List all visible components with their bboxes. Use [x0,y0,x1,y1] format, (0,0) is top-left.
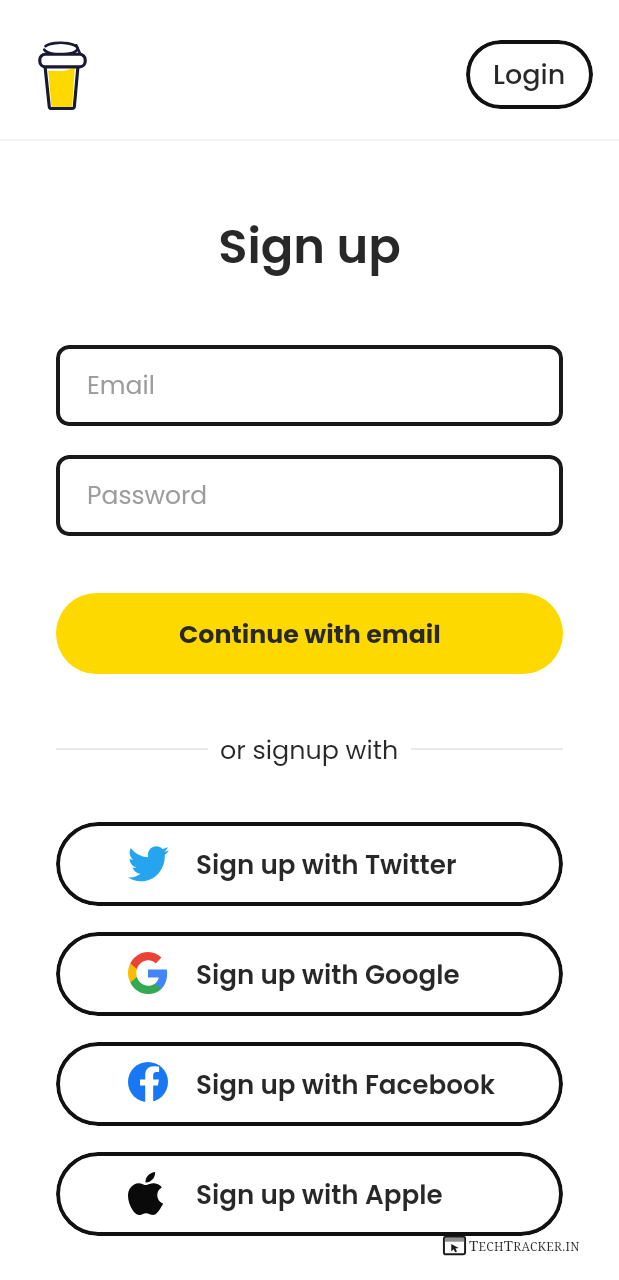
button[interactable]: Sign up with Twitter [56,822,563,906]
button[interactable]: Sign up with Apple [56,1152,563,1236]
staticText: Login [493,56,566,94]
button[interactable]: Login [466,40,593,109]
button[interactable]: Home [39,41,86,109]
button[interactable]: Sign up with Facebook [56,1042,563,1126]
staticText: Sign up with Google [196,956,460,993]
staticText: Sign up with Apple [196,1176,443,1213]
button[interactable]: Continue with email [56,593,563,674]
staticText: Sign up with Twitter [196,846,457,883]
staticText: Email [87,368,155,403]
staticText: or signup with [220,732,399,766]
staticText: Sign up with Facebook [196,1066,495,1103]
staticText: Password [87,478,208,513]
button[interactable]: Email [56,345,563,426]
staticText: Sign up [0,213,619,280]
staticText: Continue with email [179,616,441,651]
button[interactable]: Sign up with Google [56,932,563,1016]
button[interactable]: Password [56,455,563,536]
staticText: TECHTRACKER.IN [469,1235,580,1255]
